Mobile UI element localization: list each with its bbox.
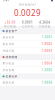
staticText: 1.0002 <box>41 42 52 46</box>
staticText: 0.0001 <box>22 21 33 24</box>
staticText: 持有份额 <box>2 68 14 72</box>
staticText: +36.00 <box>5 21 16 24</box>
staticText: 基金代码 <box>2 42 14 46</box>
staticText: 最新交易 <box>2 81 14 84</box>
button[interactable]: 累计收益 <box>0 60 55 67</box>
staticText: 基金资产 <box>5 29 17 33</box>
staticText: 交易记录 <box>5 75 17 78</box>
button[interactable]: 净值日期 <box>0 48 55 54</box>
staticText: 净值日期 <box>2 49 14 52</box>
button[interactable]: 基金代码 <box>0 41 55 47</box>
staticText: 4.3604 <box>39 21 50 24</box>
staticText: ▮▮ <box>50 0 52 2</box>
staticText: 0.0029 <box>14 8 41 18</box>
staticText: 基金名称 <box>2 36 14 39</box>
staticText: 持有明细 <box>5 55 17 59</box>
staticText: 万份收益 <box>39 25 51 28</box>
staticText: 1.0001 <box>41 35 52 39</box>
staticText: 1.0006 <box>41 81 52 84</box>
staticText: 1.0004 <box>41 62 52 65</box>
staticText: 1.0005 <box>41 68 52 72</box>
staticText: 1.0003 <box>41 49 52 53</box>
staticText: 9:41 <box>2 0 9 2</box>
button[interactable]: 持有份额 <box>0 67 55 73</box>
staticText: 昨日收益 <box>4 25 16 28</box>
staticText: 七日年化 <box>21 25 33 28</box>
staticText: 累计收益 <box>2 62 14 65</box>
button[interactable]: 基金名称 <box>0 34 55 40</box>
button[interactable]: 最新交易 <box>0 79 55 86</box>
staticText: 累计收益(元) <box>19 3 36 6</box>
